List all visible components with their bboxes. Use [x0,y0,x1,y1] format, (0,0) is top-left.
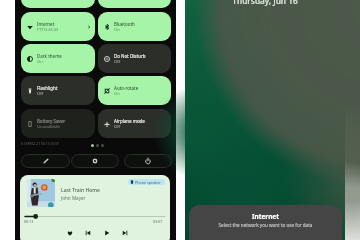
staticText: Dark theme [37,53,62,59]
button[interactable] [21,0,95,8]
staticText: Phone speaker [135,180,161,185]
staticText: On [114,27,120,33]
staticText: 5 (SPB2.210513.007) [21,141,59,146]
button[interactable]: Auto-rotate [98,76,171,105]
staticText: Off [114,59,121,65]
staticText: John Mayer [61,195,86,201]
staticText: Thursday, Jun 16 [185,0,345,6]
staticText: Internet [189,212,342,221]
staticText: Auto-rotate [114,85,139,91]
button[interactable]: Favorite [64,227,76,239]
button[interactable]: Battery Saver [21,109,95,138]
button[interactable] [98,0,171,8]
staticText: Last Train Home [61,187,100,194]
button[interactable]: Phone speaker [128,179,165,185]
staticText: 03:07 [153,219,163,224]
staticText: Off [37,91,44,97]
staticText: Do Not Disturb [114,53,146,59]
button[interactable]: Play [101,227,113,239]
staticText: Unavailable [37,124,61,130]
button[interactable]: Edit [21,154,70,168]
staticText: Select the network you want to use for d… [189,222,342,228]
staticText: On [37,59,43,65]
staticText: On [114,91,120,97]
button[interactable]: Airplane mode [98,109,171,138]
button[interactable]: Flashlight [21,76,95,105]
staticText: Off [114,124,121,130]
button[interactable]: Internet [21,12,95,41]
button[interactable]: Bluetooth [98,12,171,41]
button[interactable]: Power [124,154,172,168]
staticText: Airplane mode [114,118,145,124]
staticText: 00:13 [24,219,34,224]
button[interactable]: Dark theme [21,44,95,73]
button[interactable]: Settings [71,154,119,168]
button[interactable]: Do Not Disturb [98,44,171,73]
button[interactable]: Previous [82,227,94,239]
staticText: Bluetooth [114,21,135,27]
staticText: FTTH-4C43 [37,27,59,33]
staticText: Internet [37,21,55,27]
staticText: Battery Saver [37,118,66,124]
button[interactable]: Next [119,227,131,239]
staticText: Flashlight [37,85,58,91]
